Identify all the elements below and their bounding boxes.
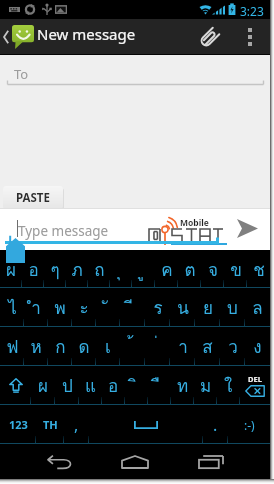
button[interactable]: ผ: [0, 250, 22, 288]
button[interactable]: More options: [236, 19, 264, 55]
button[interactable]: ไ: [0, 288, 24, 327]
button[interactable]: ใ: [217, 366, 240, 405]
button[interactable]: น: [170, 288, 195, 327]
staticText: พ: [54, 294, 66, 321]
staticText: แ: [85, 372, 96, 399]
staticText: :-): [244, 417, 255, 433]
staticText: ย: [203, 294, 213, 321]
button[interactable]: [0, 366, 31, 405]
button[interactable]: Attach: [190, 19, 228, 55]
button[interactable]: TH: [36, 405, 64, 444]
button[interactable]: ง: [245, 327, 270, 366]
staticText: ท: [177, 372, 189, 399]
button[interactable]: Back: [30, 444, 90, 479]
button[interactable]: อ: [22, 250, 44, 288]
staticText: ว: [228, 333, 238, 360]
button[interactable]: 123: [0, 405, 36, 444]
staticText: ส: [202, 333, 213, 360]
staticText: ะ: [79, 294, 89, 321]
staticText: ร: [153, 294, 163, 321]
button[interactable]: ู: [132, 250, 155, 288]
staticText: เ: [105, 333, 111, 360]
staticText: ถ: [94, 256, 105, 283]
button[interactable]: ย: [195, 288, 220, 327]
button[interactable]: ิ: [125, 366, 148, 405]
button[interactable]: า: [170, 327, 195, 366]
button[interactable]: ถ: [88, 250, 110, 288]
button[interactable]: จ: [201, 250, 224, 288]
button[interactable]: ท: [171, 366, 194, 405]
button[interactable]: .: [203, 405, 228, 444]
button[interactable]: เ: [96, 327, 120, 366]
button[interactable]: [89, 405, 203, 444]
staticText: ค: [161, 256, 173, 283]
button[interactable]: ี: [120, 288, 145, 327]
button[interactable]: ่: [145, 327, 170, 366]
staticText: อ: [108, 372, 119, 399]
button[interactable]: Send: [224, 208, 270, 250]
button[interactable]: PASTE: [3, 186, 63, 209]
button[interactable]: :-): [228, 405, 270, 444]
staticText: DEL: [248, 374, 262, 384]
staticText: ต: [184, 256, 196, 283]
button[interactable]: ด: [72, 327, 96, 366]
button[interactable]: ม: [194, 366, 217, 405]
button[interactable]: ส: [195, 327, 220, 366]
button[interactable]: DEL: [240, 366, 270, 405]
staticText: ใ: [224, 372, 233, 399]
button[interactable]: Home: [105, 444, 165, 479]
staticText: ช: [253, 256, 265, 283]
button[interactable]: อ: [102, 366, 125, 405]
button[interactable]: ผ: [31, 366, 55, 405]
button[interactable]: ั: [96, 288, 120, 327]
button[interactable]: ฟ: [0, 327, 24, 366]
button[interactable]: ้: [120, 327, 145, 366]
button[interactable]: แ: [79, 366, 102, 405]
button[interactable]: Recents: [181, 444, 241, 479]
staticText: ก: [55, 333, 66, 360]
staticText: PASTE: [16, 190, 50, 206]
staticText: ำ: [31, 294, 41, 321]
button[interactable]: ป: [55, 366, 79, 405]
button[interactable]: ว: [220, 327, 245, 366]
button[interactable]: ต: [178, 250, 201, 288]
button[interactable]: พ: [48, 288, 72, 327]
button[interactable]: ื: [148, 366, 171, 405]
staticText: จ: [208, 256, 218, 283]
staticText: อ: [28, 256, 39, 283]
button[interactable]: ร: [145, 288, 170, 327]
button[interactable]: ะ: [72, 288, 96, 327]
button[interactable]: ๆ: [44, 250, 66, 288]
staticText: New message: [37, 24, 136, 44]
button[interactable]: ำ: [24, 288, 48, 327]
staticText: ป: [62, 372, 73, 399]
button[interactable]: ค: [155, 250, 178, 288]
staticText: ฟ: [6, 333, 19, 360]
staticText: Mobile: [180, 217, 209, 229]
staticText: ม: [200, 372, 212, 399]
button[interactable]: ภ: [66, 250, 88, 288]
staticText: า: [178, 333, 188, 360]
staticText: ล: [252, 294, 263, 321]
staticText: บ: [227, 294, 238, 321]
button[interactable]: บ: [220, 288, 245, 327]
button[interactable]: ห: [24, 327, 48, 366]
button[interactable]: ,: [64, 405, 89, 444]
button[interactable]: ข: [224, 250, 247, 288]
staticText: 123: [9, 417, 28, 432]
staticText: ,: [74, 414, 79, 436]
staticText: ภ: [71, 256, 83, 283]
button[interactable]: [0, 19, 36, 55]
button[interactable]: ช: [247, 250, 270, 288]
staticText: น: [177, 294, 189, 321]
button[interactable]: ุ: [110, 250, 132, 288]
staticText: Type message: [18, 222, 109, 240]
button[interactable]: ล: [245, 288, 270, 327]
staticText: ผ: [6, 256, 16, 283]
staticText: ห: [30, 333, 42, 360]
staticText: ง: [253, 333, 262, 360]
staticText: To: [14, 65, 29, 83]
staticText: 3:23: [240, 3, 264, 19]
staticText: ข: [230, 256, 242, 283]
button[interactable]: ก: [48, 327, 72, 366]
